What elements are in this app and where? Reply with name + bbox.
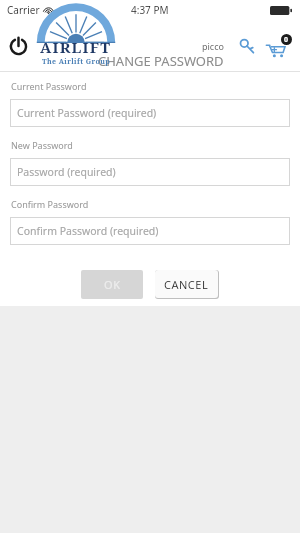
staticText: Confirm Password bbox=[11, 198, 89, 210]
staticText: AIRLIFT bbox=[40, 37, 112, 57]
button[interactable]: AIRLIFT bbox=[36, 25, 116, 67]
staticText: 4:37 PM bbox=[131, 3, 169, 17]
staticText: The Airlift Group bbox=[42, 57, 111, 67]
button[interactable]: Current Password (required) bbox=[10, 99, 290, 127]
staticText: Carrier bbox=[7, 3, 40, 17]
staticText: Current Password (required) bbox=[17, 106, 157, 120]
button[interactable]: Confirm Password (required) bbox=[10, 217, 290, 245]
staticText: CHANGE PASSWORD bbox=[98, 52, 224, 70]
staticText: New Password bbox=[11, 139, 73, 151]
button[interactable]: Log out bbox=[6, 34, 30, 58]
button[interactable]: Change password bbox=[236, 35, 258, 57]
staticText: Password (required) bbox=[17, 165, 116, 179]
staticText: 0 bbox=[284, 35, 289, 45]
button[interactable]: OK bbox=[81, 270, 143, 299]
staticText: picco bbox=[202, 40, 224, 52]
staticText: CANCEL bbox=[164, 277, 209, 292]
staticText: Current Password bbox=[11, 80, 87, 92]
button[interactable]: Password (required) bbox=[10, 158, 290, 186]
button[interactable]: CANCEL bbox=[155, 270, 218, 298]
staticText: OK bbox=[104, 277, 121, 292]
staticText: Confirm Password (required) bbox=[17, 224, 159, 238]
button[interactable]: picco bbox=[200, 36, 226, 56]
button[interactable]: Cart, 0 items bbox=[266, 34, 292, 58]
